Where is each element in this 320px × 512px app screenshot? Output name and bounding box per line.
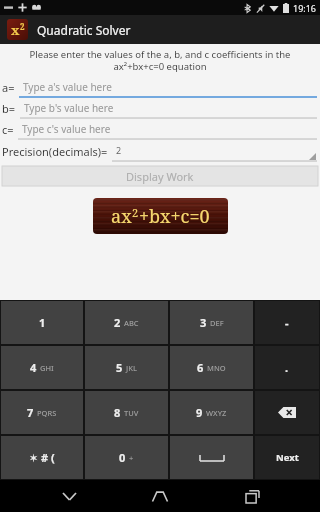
staticText: 6 — [197, 360, 204, 375]
staticText: Quadratic Solver — [37, 22, 131, 38]
staticText: DEF — [210, 318, 224, 328]
staticText: 2 — [132, 205, 139, 220]
button[interactable]: . — [255, 346, 319, 389]
staticText: Type a's value here — [23, 80, 112, 94]
staticText: Type b's value here — [24, 101, 114, 115]
button[interactable]: 3 — [170, 301, 253, 344]
button[interactable]: 6 — [170, 346, 253, 389]
staticText: 8 — [114, 405, 121, 420]
staticText: Next — [276, 451, 299, 464]
staticText: 0 — [119, 450, 126, 465]
staticText: Display Work — [126, 169, 194, 184]
staticText: 7 — [27, 405, 34, 420]
staticText: 2 — [20, 21, 25, 32]
staticText: GHI — [40, 363, 54, 373]
staticText: 2 — [116, 144, 122, 156]
button[interactable]: Home — [137, 480, 183, 512]
button[interactable]: Type c's value here — [18, 119, 317, 140]
button[interactable]: 4 — [1, 346, 83, 389]
button[interactable]: Backspace — [255, 391, 319, 434]
staticText: 19:16 — [293, 2, 317, 14]
staticText: a= — [2, 80, 15, 95]
staticText: TUV — [124, 408, 139, 418]
button[interactable]: 8 — [85, 391, 168, 434]
staticText: + — [129, 453, 134, 463]
staticText: MNO — [207, 363, 226, 373]
button[interactable]: Next — [255, 436, 319, 479]
button[interactable]: ✶ # ( — [1, 436, 83, 479]
button[interactable]: Hide keyboard — [46, 480, 92, 512]
button[interactable]: 0 — [85, 436, 168, 479]
button[interactable]: - — [255, 301, 319, 344]
staticText: Precision(decimals)= — [2, 144, 108, 159]
staticText: - — [285, 315, 289, 330]
staticText: 5 — [116, 360, 123, 375]
staticText: ax — [111, 204, 132, 229]
staticText: b= — [2, 101, 16, 116]
staticText: WXYZ — [206, 408, 227, 418]
button[interactable]: 5 — [85, 346, 168, 389]
staticText: JKL — [126, 363, 137, 373]
button[interactable]: 2 — [112, 140, 317, 162]
button[interactable]: Recent apps — [229, 480, 275, 512]
button[interactable]: Display Work — [2, 166, 318, 186]
staticText: 1 — [39, 315, 46, 330]
staticText: +bx+c=0 — [139, 204, 210, 229]
staticText: x — [11, 21, 20, 39]
staticText: 4 — [30, 360, 37, 375]
button[interactable]: 9 — [170, 391, 253, 434]
staticText: Type c's value here — [22, 122, 111, 136]
button[interactable]: Type b's value here — [20, 98, 317, 119]
button[interactable]: 2 — [85, 301, 168, 344]
staticText: ABC — [124, 318, 139, 328]
staticText: c= — [2, 122, 14, 137]
staticText: . — [285, 360, 289, 375]
staticText: ✶ # ( — [29, 450, 55, 465]
button[interactable]: Space — [170, 436, 253, 479]
staticText: Please enter the values of the a, b, and… — [6, 48, 314, 73]
staticText: 2 — [114, 315, 121, 330]
button[interactable]: 7 — [1, 391, 83, 434]
staticText: PQRS — [37, 408, 57, 418]
staticText: 3 — [200, 315, 207, 330]
button[interactable]: 1 — [1, 301, 83, 344]
staticText: 9 — [196, 405, 203, 420]
button[interactable]: Type a's value here — [19, 77, 317, 98]
